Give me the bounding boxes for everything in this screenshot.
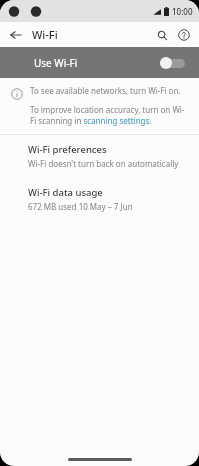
button[interactable]: Help xyxy=(173,24,195,46)
button[interactable]: Wi-Fi preferences xyxy=(0,135,199,178)
staticText: To see available networks, turn Wi-Fi on… xyxy=(30,85,181,96)
staticText: Wi-Fi data usage xyxy=(28,186,103,199)
staticText: Use Wi-Fi xyxy=(34,56,78,70)
staticText: Wi-Fi doesn't turn back on automatically xyxy=(28,158,179,169)
staticText: Wi-Fi xyxy=(32,27,58,42)
button[interactable]: Use Wi-Fi xyxy=(0,47,199,78)
staticText: 10:00 xyxy=(172,6,193,17)
button[interactable]: Search xyxy=(151,24,173,46)
staticText: 672 MB used 10 May – 7 Jun xyxy=(28,201,133,212)
button[interactable]: Wi-Fi data usage xyxy=(0,178,199,221)
button[interactable]: Back xyxy=(6,25,26,45)
staticText: Wi-Fi preferences xyxy=(28,143,107,156)
staticText: To improve location accuracy, turn on Wi… xyxy=(30,104,185,126)
